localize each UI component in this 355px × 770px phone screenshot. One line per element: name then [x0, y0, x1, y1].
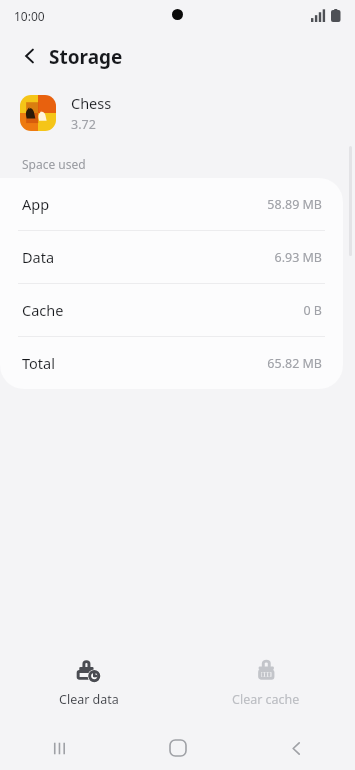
button[interactable]: Recent apps [0, 726, 119, 770]
staticText: 58.89 MB [267, 196, 322, 213]
staticText: Clear data [59, 691, 119, 708]
button[interactable]: Clear data [0, 652, 177, 708]
button[interactable]: Cache [0, 284, 343, 336]
staticText: 65.82 MB [267, 355, 322, 372]
staticText: Clear cache [232, 691, 300, 708]
staticText: 3.72 [71, 116, 96, 133]
button[interactable]: Clear cache [177, 652, 355, 708]
button[interactable]: Back [237, 726, 355, 770]
staticText: 0 B [303, 302, 322, 319]
button[interactable]: Total [0, 337, 343, 389]
staticText: Storage [49, 44, 123, 70]
staticText: 6.93 MB [274, 249, 322, 266]
button[interactable]: App [0, 178, 343, 230]
staticText: Space used [22, 156, 86, 172]
staticText: 10:00 [14, 8, 45, 24]
staticText: App [22, 194, 50, 214]
button[interactable]: Home [119, 726, 237, 770]
button[interactable]: Data [0, 231, 343, 283]
button[interactable]: Back [14, 40, 46, 72]
staticText: Total [22, 353, 55, 373]
staticText: Chess [71, 93, 112, 113]
staticText: Cache [22, 300, 64, 320]
staticText: Data [22, 247, 55, 267]
